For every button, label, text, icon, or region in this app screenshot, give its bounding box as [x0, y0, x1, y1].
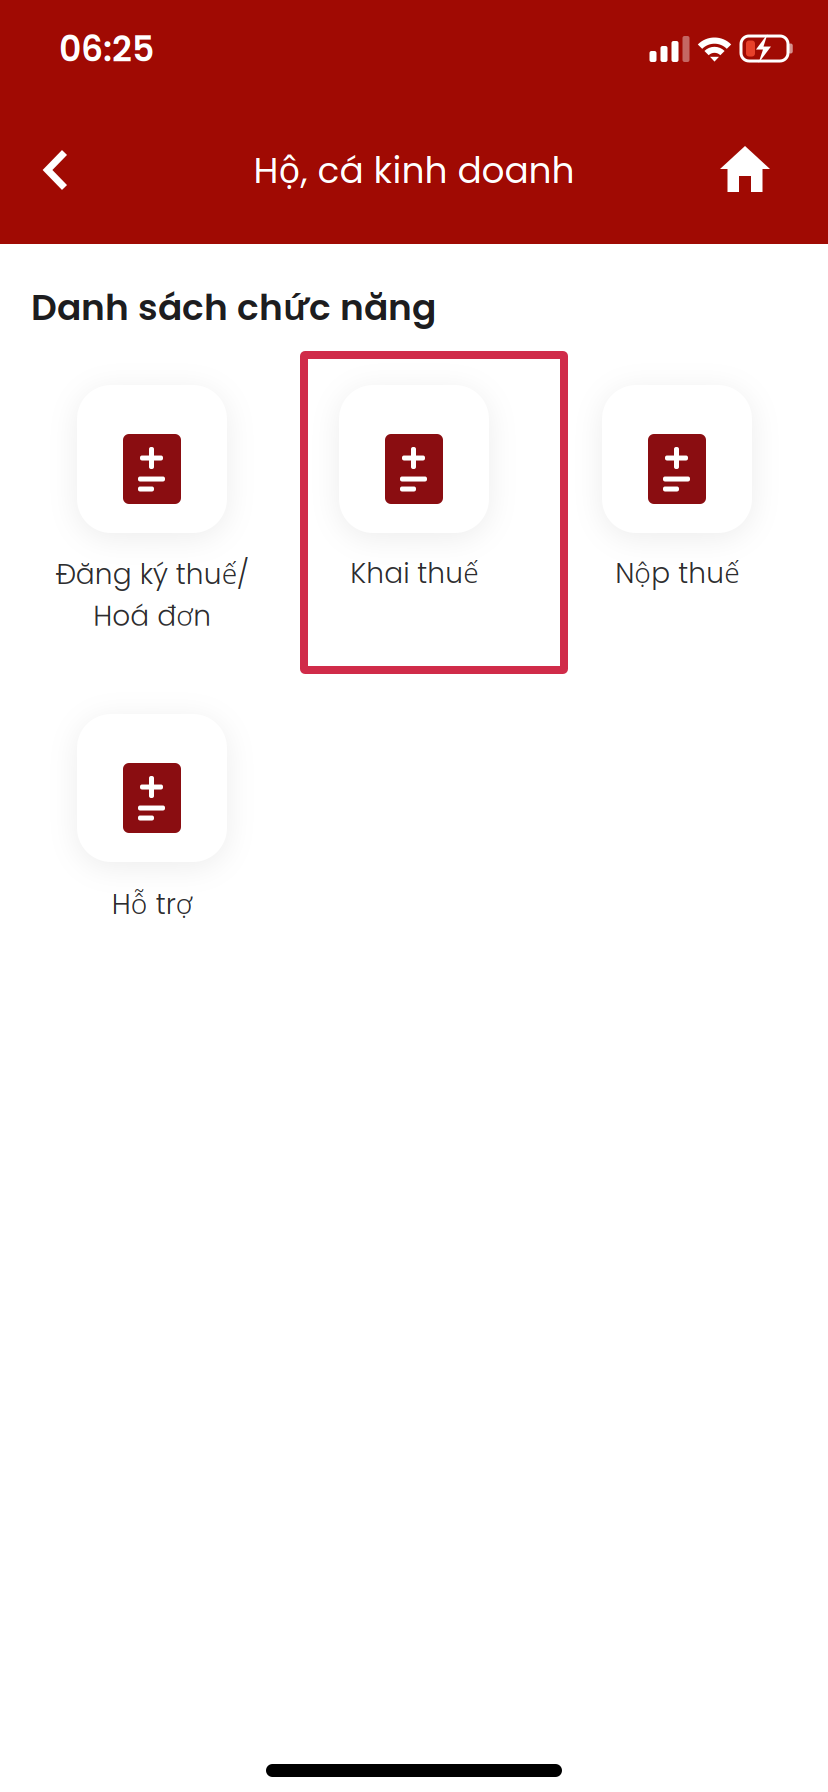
- button[interactable]: Home: [700, 121, 790, 217]
- staticText: 06:25: [59, 25, 154, 73]
- button[interactable]: Nộp thuế: [552, 385, 802, 555]
- staticText: Nộp thuế: [615, 553, 739, 593]
- staticText: Danh sách chức năng: [31, 281, 436, 333]
- staticText: Khai thuế: [350, 553, 478, 593]
- button[interactable]: Khai thuế: [289, 385, 539, 555]
- button[interactable]: Back: [11, 122, 101, 218]
- staticText: Đăng ký thuế/ Hoá đơn: [55, 554, 248, 635]
- button[interactable]: Hỗ trợ: [27, 714, 277, 884]
- button[interactable]: Đăng ký thuế/ Hoá đơn: [27, 385, 277, 555]
- staticText: Hỗ trợ: [111, 884, 192, 924]
- staticText: Hộ, cá kinh doanh: [253, 144, 574, 196]
